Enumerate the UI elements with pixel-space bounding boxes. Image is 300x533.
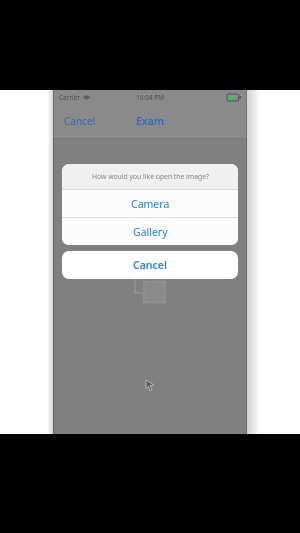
staticText: Camera [131, 197, 170, 211]
button[interactable]: Cancel [53, 109, 107, 133]
staticText: Cancel [133, 258, 167, 272]
staticText: Exam [136, 114, 164, 128]
button[interactable]: Camera [62, 190, 238, 217]
staticText: Cancel [64, 114, 96, 128]
staticText: 10:04 PM [136, 93, 165, 102]
staticText: How would you like open the image? [92, 172, 209, 181]
staticText: Carrier [59, 93, 81, 102]
button[interactable]: Gallery [62, 218, 238, 245]
button[interactable]: Cancel [62, 251, 238, 279]
staticText: Gallery [133, 225, 168, 239]
